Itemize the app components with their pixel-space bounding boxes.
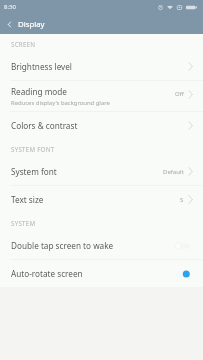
staticText: SCREEN [11, 40, 36, 48]
staticText: Display [18, 19, 45, 30]
staticText: Reading mode [11, 86, 67, 97]
staticText: Text size [11, 194, 44, 205]
button[interactable]: Reading mode [0, 81, 203, 111]
staticText: Default [163, 168, 184, 176]
button[interactable]: System font [0, 158, 203, 185]
staticText: SYSTEM FONT [11, 145, 55, 153]
staticText: 8:30 [4, 3, 16, 11]
button[interactable]: Double tap screen to wake [0, 232, 203, 259]
button[interactable]: Text size [0, 186, 203, 213]
button[interactable]: Back [0, 14, 18, 34]
staticText: S [180, 196, 184, 204]
staticText: Double tap screen to wake [11, 240, 174, 251]
button[interactable]: Colors & contrast [0, 112, 203, 139]
staticText: Brightness level [11, 61, 72, 72]
staticText: SYSTEM [11, 219, 36, 227]
button[interactable]: Auto-rotate screen [0, 260, 203, 287]
staticText: Reduces display's background glare [11, 99, 110, 107]
staticText: Colors & contrast [11, 120, 78, 131]
button[interactable]: Brightness level [0, 53, 203, 80]
staticText: Off [175, 90, 184, 98]
staticText: Auto-rotate screen [11, 268, 174, 279]
staticText: System font [11, 166, 57, 177]
